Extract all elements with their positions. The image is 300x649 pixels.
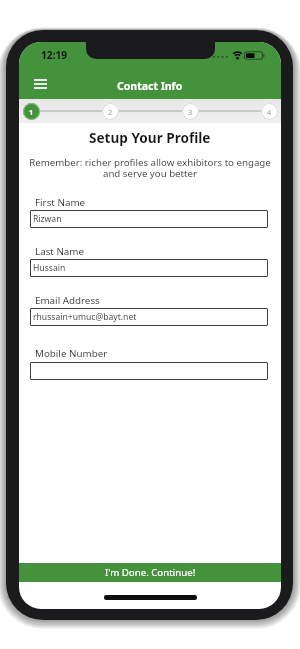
staticText: Rizwan (33, 213, 62, 225)
staticText: Mobile Number (35, 347, 108, 360)
staticText: First Name (35, 196, 86, 209)
staticText: 12:19 (41, 48, 68, 62)
button[interactable]: Rizwan (30, 210, 268, 228)
staticText: 4 (267, 107, 272, 117)
button[interactable]: Hussain (30, 259, 268, 277)
staticText: 2 (108, 107, 113, 117)
button[interactable] (30, 362, 268, 380)
staticText: 1 (29, 107, 34, 117)
staticText: Hussain (33, 262, 66, 274)
staticText: Setup Your Profile (89, 128, 211, 147)
staticText: 3 (188, 107, 193, 117)
button[interactable]: rhussain+umuc@bayt.net (30, 308, 268, 326)
staticText: Contact Info (117, 79, 183, 93)
staticText: rhussain+umuc@bayt.net (33, 311, 137, 323)
button[interactable]: I'm Done. Continue! (19, 563, 281, 582)
staticText: Last Name (35, 245, 85, 258)
button[interactable] (26, 73, 54, 95)
staticText: Remember: richer profiles allow exhibito… (29, 156, 271, 180)
staticText: Email Address (35, 294, 100, 307)
staticText: I'm Done. Continue! (105, 566, 196, 579)
